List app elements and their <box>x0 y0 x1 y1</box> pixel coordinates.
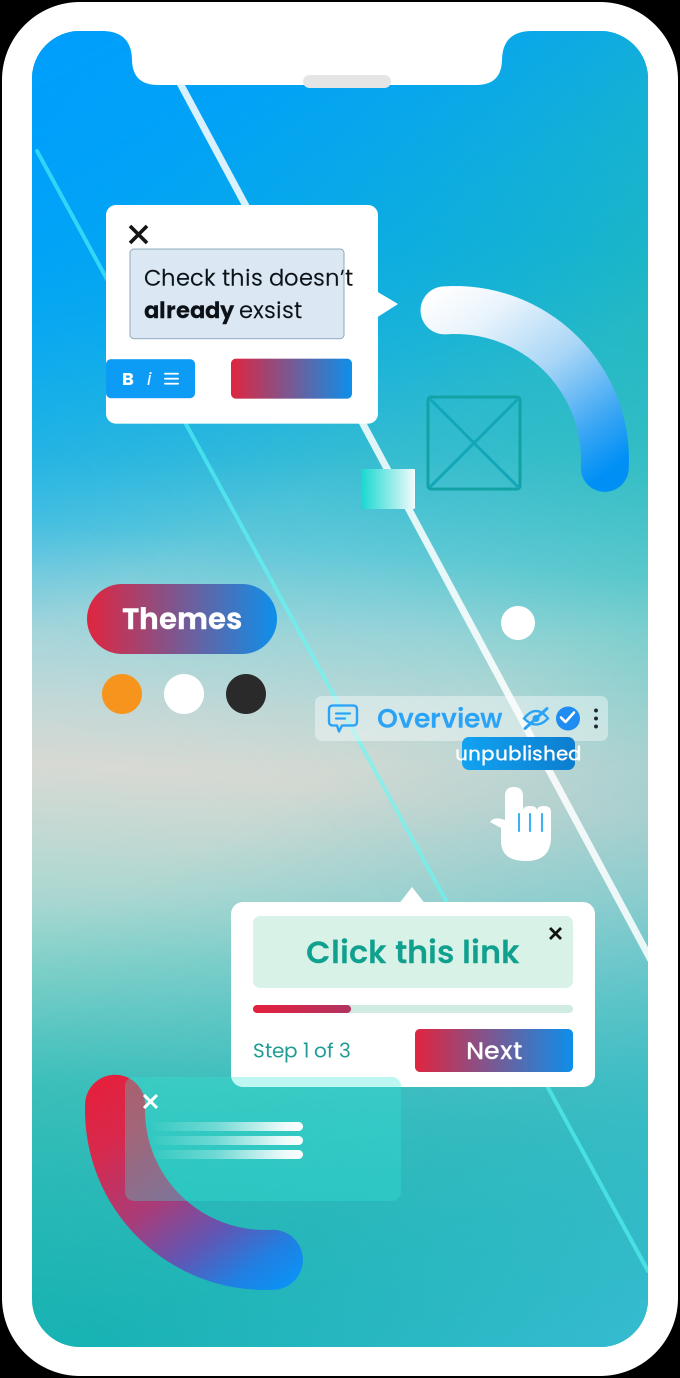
staticText: Check this doesn’t <box>144 262 353 294</box>
button[interactable]: Apply <box>231 359 352 399</box>
button[interactable]: Text formatting <box>106 359 195 398</box>
button[interactable]: Close <box>106 205 157 249</box>
button[interactable]: Close <box>125 1077 171 1122</box>
staticText: Themes <box>122 598 242 640</box>
staticText: unpublished <box>455 739 582 767</box>
button[interactable]: Light theme <box>164 674 204 714</box>
button[interactable]: Close <box>536 916 573 953</box>
button[interactable]: Themes <box>87 584 277 654</box>
button[interactable]: Dark theme <box>226 674 266 714</box>
staticText: Step 1 of 3 <box>253 1036 351 1064</box>
staticText: Next <box>466 1033 522 1068</box>
staticText: B <box>122 366 134 391</box>
staticText: i <box>147 366 151 391</box>
staticText: Overview <box>377 700 503 737</box>
staticText: already exsist <box>144 295 302 326</box>
button[interactable]: Orange theme <box>102 674 142 714</box>
staticText: Click this link <box>306 930 520 974</box>
button[interactable]: Next <box>415 1029 573 1072</box>
